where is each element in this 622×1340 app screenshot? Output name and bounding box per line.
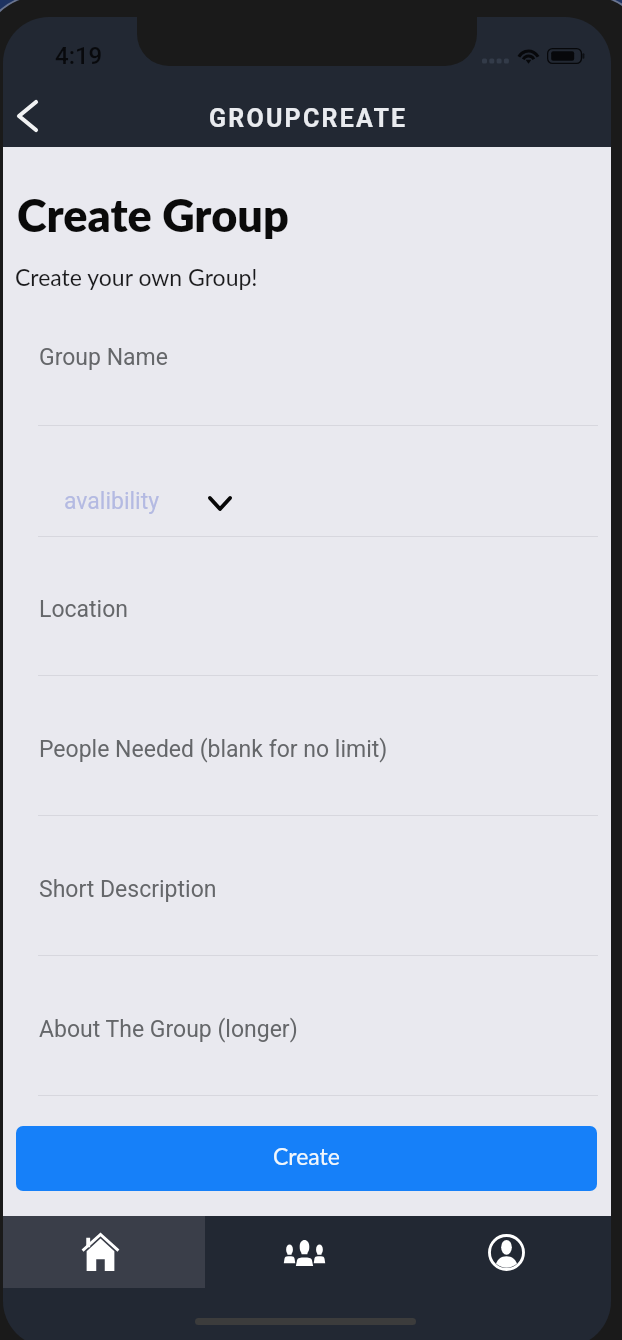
staticText: avalibility [64, 488, 160, 515]
staticText: About The Group (longer) [39, 1016, 298, 1043]
button[interactable]: About The Group (longer) [3, 988, 611, 1058]
button[interactable]: Home [3, 1216, 205, 1288]
staticText: Location [39, 596, 128, 623]
staticText: Create Group [17, 188, 289, 242]
button[interactable]: Profile [408, 1216, 611, 1288]
staticText: People Needed (blank for no limit) [39, 736, 388, 763]
button[interactable]: People Needed (blank for no limit) [3, 708, 611, 778]
staticText: Short Description [39, 876, 217, 903]
button[interactable]: Location [3, 568, 611, 638]
staticText: Create your own Group! [15, 263, 258, 291]
button[interactable]: Groups [205, 1216, 408, 1288]
staticText: Group Name [39, 344, 168, 371]
button[interactable]: Short Description [3, 848, 611, 918]
button[interactable]: Group Name [3, 316, 611, 386]
button[interactable]: avalibility [3, 463, 611, 525]
button[interactable]: Back [3, 79, 55, 135]
staticText: GROUPCREATE [209, 104, 408, 133]
staticText: 4:19 [55, 42, 103, 70]
button[interactable]: Create [16, 1126, 597, 1191]
staticText: Create [273, 1142, 340, 1170]
